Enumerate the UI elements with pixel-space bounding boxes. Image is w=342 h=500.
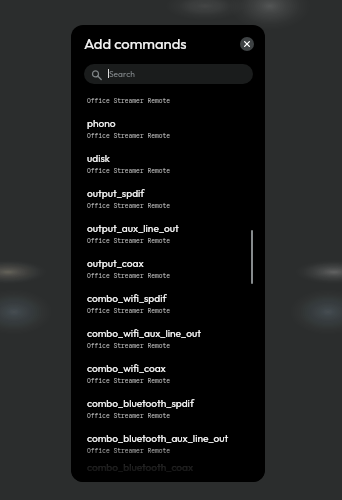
button[interactable]: combo_wifi_aux_line_out [71,321,265,356]
staticText: combo_bluetooth_spdif [87,397,194,410]
staticText: output_coax [87,257,144,270]
button[interactable]: combo_wifi_spdif [71,286,265,321]
staticText: Office Streamer Remote [87,132,171,140]
staticText: output_aux_line_out [87,222,179,235]
staticText: combo_wifi_aux_line_out [87,327,201,340]
staticText: Office Streamer Remote [87,97,171,105]
staticText: Office Streamer Remote [87,447,171,455]
staticText: Office Streamer Remote [87,202,171,210]
button[interactable]: combo_bluetooth_spdif [71,391,265,426]
button[interactable]: combo_bluetooth_coax [71,461,265,473]
button[interactable]: hdmi [71,85,265,111]
button[interactable]: output_coax [71,251,265,286]
button[interactable]: phono [71,111,265,146]
staticText: Office Streamer Remote [87,342,171,350]
button[interactable]: udisk [71,146,265,181]
staticText: Office Streamer Remote [87,307,171,315]
staticText: Add commands [84,34,187,53]
staticText: Office Streamer Remote [87,167,171,175]
staticText: combo_wifi_spdif [87,292,167,305]
button[interactable]: output_aux_line_out [71,216,265,251]
staticText: combo_bluetooth_aux_line_out [87,432,229,445]
staticText: combo_bluetooth_coax [87,461,194,473]
staticText: Office Streamer Remote [87,237,171,245]
staticText: Office Streamer Remote [87,412,171,420]
button[interactable]: combo_wifi_coax [71,356,265,391]
staticText: combo_wifi_coax [87,362,166,375]
button[interactable]: Search [84,64,253,84]
staticText: udisk [87,152,110,165]
button[interactable]: combo_bluetooth_aux_line_out [71,426,265,461]
staticText: phono [87,117,116,130]
staticText: output_spdif [87,187,145,200]
staticText: Office Streamer Remote [87,377,171,385]
staticText: Office Streamer Remote [87,272,171,280]
button[interactable]: Close [240,37,254,51]
button[interactable]: output_spdif [71,181,265,216]
staticText: Search [109,69,135,80]
